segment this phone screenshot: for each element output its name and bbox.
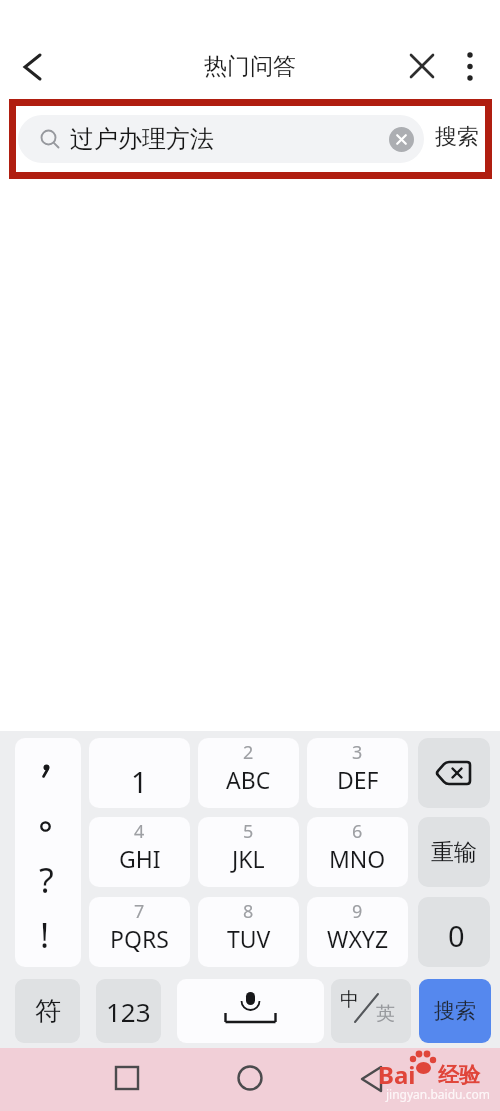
staticText: 123 — [106, 994, 151, 1029]
button[interactable]: 8 — [198, 897, 299, 967]
staticText: 搜索 — [434, 998, 476, 1024]
button[interactable]: 1 — [89, 738, 190, 808]
staticText: ABC — [226, 764, 271, 795]
staticText: ? — [39, 857, 54, 903]
button[interactable]: 0 — [418, 897, 490, 967]
button[interactable]: ? — [15, 738, 81, 967]
button[interactable]: 符 — [15, 979, 80, 1043]
staticText: 英 — [376, 1002, 395, 1026]
button[interactable] — [389, 127, 414, 152]
staticText: TUV — [227, 923, 271, 954]
button[interactable]: 3 — [307, 738, 408, 808]
staticText: 2 — [243, 740, 254, 765]
button[interactable]: 2 — [198, 738, 299, 808]
staticText: 热门问答 — [204, 52, 296, 81]
staticText: 中 — [340, 988, 359, 1012]
staticText: 6 — [352, 819, 363, 844]
button[interactable] — [400, 44, 444, 88]
staticText: 搜索 — [435, 123, 479, 151]
button[interactable]: 重输 — [418, 817, 490, 887]
staticText: MNO — [329, 843, 386, 874]
button[interactable]: 搜索 — [419, 979, 491, 1043]
staticText: DEF — [337, 764, 379, 795]
staticText: 3 — [352, 740, 363, 765]
staticText: 7 — [134, 899, 145, 924]
staticText: 8 — [243, 899, 254, 924]
button[interactable]: 搜索 — [428, 106, 485, 172]
button[interactable]: 过户办理方法 — [18, 115, 424, 163]
button[interactable]: 5 — [198, 817, 299, 887]
button[interactable]: 7 — [89, 897, 190, 967]
button[interactable] — [418, 738, 490, 808]
button[interactable]: 中 — [331, 979, 411, 1043]
staticText: 1 — [131, 762, 148, 801]
staticText: 经验 — [438, 1062, 480, 1088]
staticText: 重输 — [431, 838, 477, 867]
staticText: 4 — [134, 819, 145, 844]
button[interactable] — [14, 45, 58, 89]
button[interactable]: 4 — [89, 817, 190, 887]
button[interactable]: 6 — [307, 817, 408, 887]
staticText: ! — [40, 912, 50, 958]
staticText: GHI — [119, 843, 161, 874]
staticText: 5 — [243, 819, 254, 844]
button[interactable] — [177, 979, 324, 1043]
staticText: 9 — [352, 899, 363, 924]
staticText: 符 — [35, 995, 61, 1028]
staticText: Bai — [378, 1058, 416, 1091]
staticText: 0 — [448, 916, 465, 955]
button[interactable]: 9 — [307, 897, 408, 967]
staticText: JKL — [232, 843, 265, 874]
button[interactable] — [448, 44, 492, 88]
staticText: PQRS — [110, 923, 169, 954]
button[interactable]: 123 — [96, 979, 161, 1043]
staticText: 过户办理方法 — [70, 124, 214, 154]
staticText: WXYZ — [327, 923, 389, 954]
staticText: jingyan.baidu.com — [386, 1086, 490, 1102]
